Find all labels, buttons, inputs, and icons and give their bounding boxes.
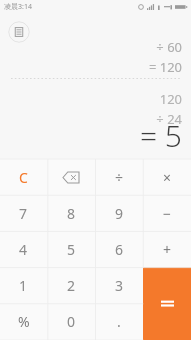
- staticText: −: [163, 204, 172, 223]
- other: Backspace: [63, 172, 79, 183]
- staticText: 120: [159, 90, 182, 108]
- button[interactable]: 1: [0, 267, 47, 303]
- button[interactable]: C: [0, 159, 47, 195]
- staticText: ×: [163, 168, 172, 187]
- button[interactable]: 6: [95, 231, 143, 267]
- button[interactable]: +: [143, 231, 191, 267]
- button[interactable]: Equals: [143, 267, 191, 340]
- button[interactable]: 0: [47, 303, 95, 339]
- staticText: 3: [115, 276, 124, 295]
- staticText: ÷ 60: [156, 38, 182, 56]
- button[interactable]: Backspace: [47, 159, 95, 195]
- button[interactable]: 3: [95, 267, 143, 303]
- staticText: 9: [115, 204, 124, 223]
- staticText: 6: [115, 240, 124, 259]
- button[interactable]: 4: [0, 231, 47, 267]
- staticText: ÷: [115, 168, 124, 187]
- staticText: 5: [67, 240, 76, 259]
- button[interactable]: History: [8, 21, 30, 43]
- staticText: .: [117, 312, 121, 331]
- button[interactable]: 7: [0, 195, 47, 231]
- staticText: C: [19, 168, 28, 187]
- button[interactable]: 2: [47, 267, 95, 303]
- staticText: 2: [67, 276, 76, 295]
- staticText: ÷ 24: [156, 110, 182, 128]
- button[interactable]: %: [0, 303, 47, 339]
- staticText: 凌晨3:14: [4, 2, 32, 12]
- staticText: %: [18, 312, 30, 331]
- button[interactable]: 5: [47, 231, 95, 267]
- staticText: 0: [67, 312, 76, 331]
- staticText: 1: [19, 276, 28, 295]
- staticText: 7: [19, 204, 28, 223]
- staticText: 8: [67, 204, 76, 223]
- button[interactable]: .: [95, 303, 143, 339]
- button[interactable]: 9: [95, 195, 143, 231]
- button[interactable]: −: [143, 195, 191, 231]
- button[interactable]: ÷: [95, 159, 143, 195]
- staticText: 4: [19, 240, 28, 259]
- staticText: = 120: [148, 58, 182, 76]
- staticText: +: [163, 240, 172, 259]
- button[interactable]: 8: [47, 195, 95, 231]
- staticText: = 5: [139, 115, 182, 156]
- button[interactable]: ×: [143, 159, 191, 195]
